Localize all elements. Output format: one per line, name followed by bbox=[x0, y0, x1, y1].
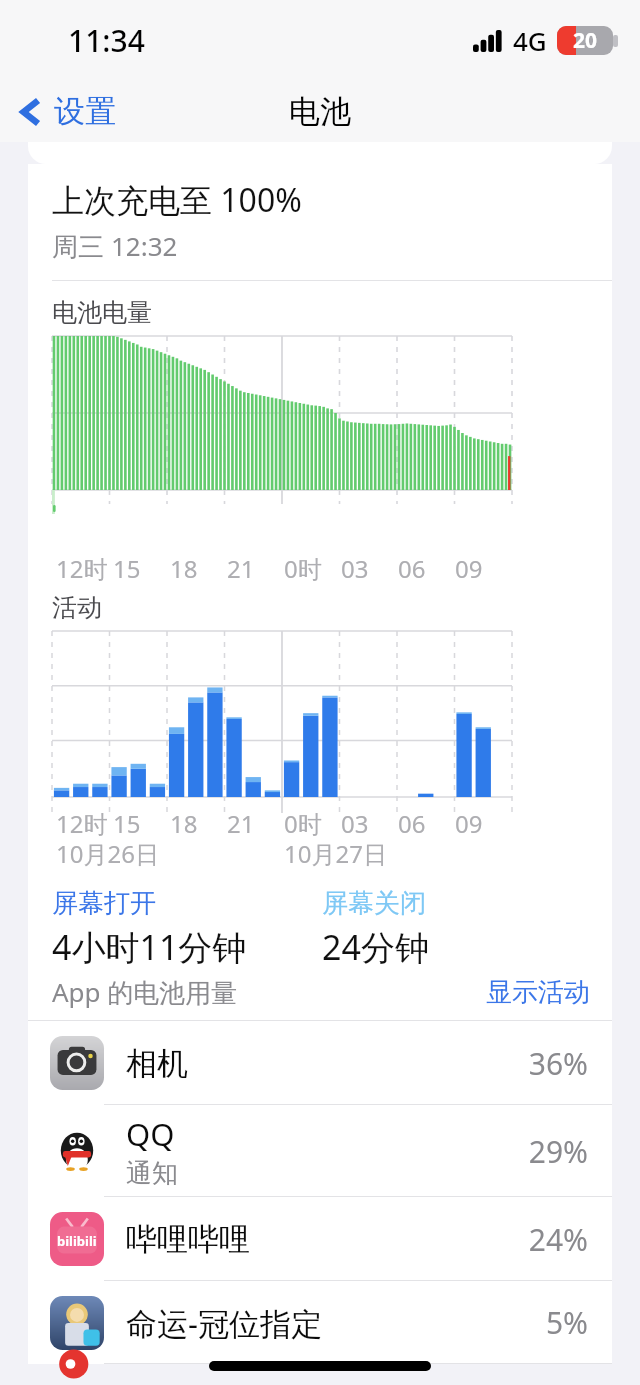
staticText: 活动 bbox=[52, 592, 102, 623]
staticText: 06 bbox=[398, 552, 426, 582]
staticText: App 的电池用量 bbox=[52, 974, 238, 1010]
staticText: 4G bbox=[513, 23, 547, 58]
staticText: 21 bbox=[227, 552, 255, 582]
staticText: 周三 bbox=[52, 228, 111, 264]
staticText: 12:32 bbox=[111, 228, 178, 263]
staticText: 显示活动 bbox=[486, 976, 590, 1009]
staticText: 15 bbox=[113, 807, 141, 837]
staticText: 屏幕关闭 bbox=[322, 887, 426, 920]
staticText: 09 bbox=[455, 807, 483, 837]
button[interactable]: 命运-冠位指定 bbox=[28, 1281, 612, 1364]
staticText: 10月27日 bbox=[284, 837, 387, 870]
staticText: 4小时11分钟 bbox=[52, 924, 247, 964]
staticText: bilibili bbox=[57, 1232, 97, 1250]
staticText: 03 bbox=[341, 807, 369, 837]
staticText: 20 bbox=[573, 26, 598, 55]
staticText: 相机 bbox=[126, 1044, 188, 1083]
staticText: 36% bbox=[528, 1043, 588, 1084]
staticText: 通知 bbox=[126, 1157, 178, 1190]
staticText: 0时 bbox=[284, 807, 322, 837]
staticText: 09 bbox=[455, 552, 483, 582]
button[interactable]: QQ bbox=[28, 1105, 612, 1197]
staticText: 命运-冠位指定 bbox=[126, 1302, 322, 1344]
staticText: 5% bbox=[545, 1302, 588, 1343]
staticText: 12时 bbox=[56, 807, 108, 837]
staticText: 15 bbox=[113, 552, 141, 582]
staticText: 电池电量 bbox=[52, 297, 152, 328]
staticText: 24% bbox=[528, 1219, 588, 1260]
staticText: 10月26日 bbox=[56, 837, 159, 870]
staticText: 0时 bbox=[284, 552, 322, 582]
staticText: 上次充电至 100% bbox=[52, 178, 302, 222]
staticText: 21 bbox=[227, 807, 255, 837]
staticText: 屏幕打开 bbox=[52, 887, 156, 920]
staticText: 哔哩哔哩 bbox=[126, 1220, 250, 1259]
staticText: 电池 bbox=[289, 92, 351, 131]
staticText: 11:34 bbox=[68, 20, 145, 61]
staticText: 设置 bbox=[54, 92, 116, 131]
staticText: 24分钟 bbox=[322, 924, 429, 964]
staticText: 12时 bbox=[56, 552, 108, 582]
button[interactable]: 相机 bbox=[28, 1021, 612, 1105]
staticText: 18 bbox=[170, 807, 198, 837]
staticText: QQ bbox=[126, 1113, 175, 1155]
staticText: 03 bbox=[341, 552, 369, 582]
button[interactable]: bilibili bbox=[28, 1197, 612, 1281]
button[interactable]: 设置 bbox=[14, 88, 122, 135]
staticText: 06 bbox=[398, 807, 426, 837]
staticText: 18 bbox=[170, 552, 198, 582]
button[interactable]: 显示活动 bbox=[476, 968, 612, 1017]
staticText: 29% bbox=[528, 1131, 588, 1172]
